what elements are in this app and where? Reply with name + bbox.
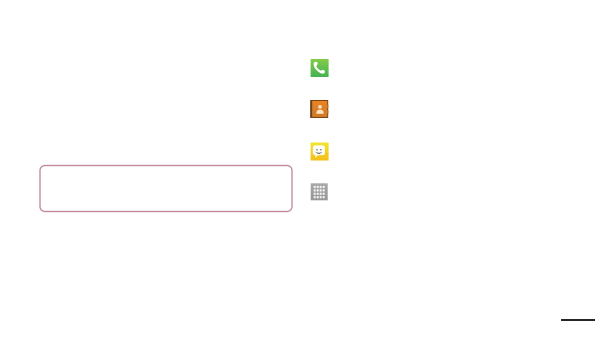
button[interactable]: Keypad: [311, 183, 328, 200]
button[interactable]: Contacts: [311, 100, 328, 117]
button[interactable]: Phone: [311, 59, 329, 77]
button[interactable]: Messages: [311, 142, 329, 160]
